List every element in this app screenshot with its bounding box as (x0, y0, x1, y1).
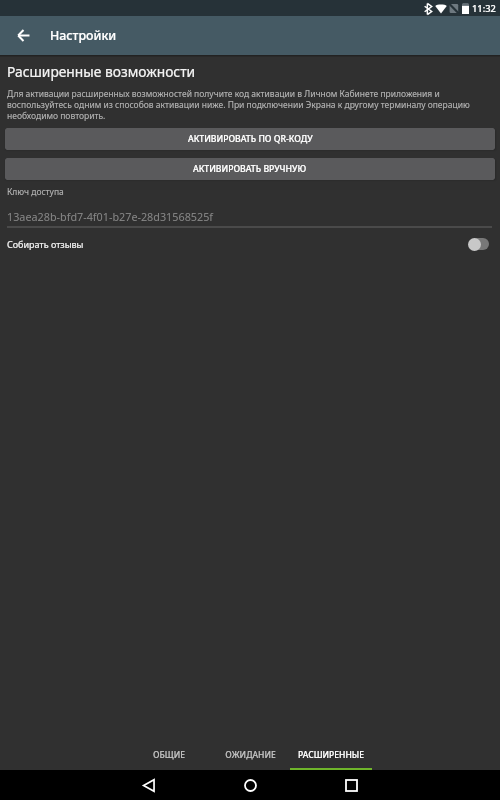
button[interactable]: Back (0, 16, 46, 55)
button[interactable]: ОБЩИЕ (128, 740, 210, 770)
button[interactable]: Recents (321, 770, 381, 800)
button[interactable]: АКТИВИРОВАТЬ ВРУЧНУЮ (5, 158, 495, 180)
staticText: ОБЩИЕ (153, 749, 185, 761)
button[interactable]: Собирать отзывы (0, 228, 500, 260)
staticText: Расширенные возможности (7, 62, 196, 81)
staticText: Собирать отзывы (7, 238, 84, 250)
button[interactable]: Back (119, 770, 179, 800)
staticText: Для активации расширенных возможностей п… (7, 88, 493, 121)
button[interactable]: ОЖИДАНИЕ (210, 740, 290, 770)
staticText: Ключ доступа (7, 186, 64, 198)
button[interactable]: Home (220, 770, 280, 800)
staticText: ОЖИДАНИЕ (225, 749, 276, 761)
staticText: Настройки (50, 27, 117, 44)
button[interactable]: РАСШИРЕННЫЕ (290, 740, 372, 770)
staticText: РАСШИРЕННЫЕ (298, 749, 364, 761)
staticText: 11:32 (472, 2, 496, 15)
staticText: АКТИВИРОВАТЬ ПО QR-КОДУ (188, 133, 313, 145)
button[interactable]: АКТИВИРОВАТЬ ПО QR-КОДУ (5, 128, 495, 150)
staticText: 13aea28b-bfd7-4f01-b27e-28d31568525f (7, 209, 214, 224)
staticText: АКТИВИРОВАТЬ ВРУЧНУЮ (193, 163, 307, 175)
